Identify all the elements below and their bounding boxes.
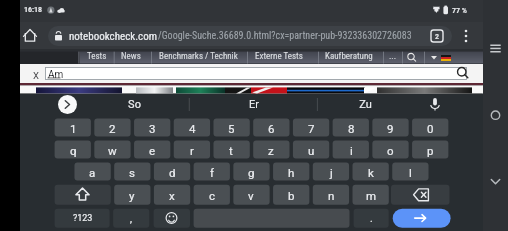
staticText: l <box>409 166 412 179</box>
staticText: m <box>366 189 377 202</box>
button[interactable]: z <box>253 141 289 159</box>
staticText: g <box>248 166 255 179</box>
staticText: 5 <box>228 122 235 135</box>
staticText: i <box>350 144 353 157</box>
button[interactable]: i <box>333 141 369 159</box>
button[interactable]: Er <box>190 94 317 115</box>
staticText: y <box>129 189 135 202</box>
staticText: 77 % <box>452 6 467 15</box>
staticText: Kaufberatung <box>325 51 373 62</box>
button[interactable]: 7 <box>293 119 329 137</box>
button[interactable]: e <box>134 141 170 159</box>
button[interactable]: Enter <box>393 209 451 228</box>
staticText: s <box>129 166 135 179</box>
button[interactable]: g <box>233 163 269 181</box>
staticText: u <box>308 144 315 157</box>
staticText: r <box>190 144 194 157</box>
button[interactable]: 9 <box>372 119 408 137</box>
button[interactable]: Tabs <box>430 29 444 43</box>
button[interactable]: 2 <box>94 119 130 137</box>
button[interactable]: x <box>154 185 190 205</box>
button[interactable]: l <box>392 163 428 181</box>
staticText: . <box>370 213 373 225</box>
button[interactable]: d <box>154 163 190 181</box>
staticText: e <box>149 144 156 157</box>
button[interactable]: Shift <box>55 185 111 205</box>
button[interactable]: Emoji <box>154 209 190 228</box>
button[interactable]: h <box>273 163 309 181</box>
button[interactable]: u <box>293 141 329 159</box>
staticText: 2 <box>435 32 439 41</box>
button[interactable]: f <box>194 163 230 181</box>
staticText: 3 <box>149 122 156 135</box>
button[interactable]: q <box>55 141 91 159</box>
staticText: /Google-Suche.36689.0.html?cx=partner-pu… <box>158 30 412 42</box>
button[interactable]: w <box>94 141 130 159</box>
staticText: p <box>427 144 434 157</box>
staticText: k <box>368 166 374 179</box>
button[interactable]: p <box>412 141 448 159</box>
staticText: , <box>130 213 132 225</box>
button[interactable]: r <box>174 141 210 159</box>
staticText: w <box>108 144 117 157</box>
staticText: b <box>288 189 295 202</box>
button[interactable]: m <box>353 185 389 205</box>
staticText: j <box>330 166 333 179</box>
staticText: n <box>328 189 335 202</box>
staticText: 8 <box>348 122 355 135</box>
staticText: f <box>210 166 214 179</box>
button[interactable]: , <box>113 209 149 228</box>
staticText: 0 <box>427 122 434 135</box>
staticText: 16:18 <box>24 5 43 14</box>
staticText: z <box>268 144 274 157</box>
button[interactable]: 4 <box>174 119 210 137</box>
button[interactable]: j <box>313 163 349 181</box>
button[interactable]: n <box>313 185 349 205</box>
button[interactable]: So <box>80 94 189 115</box>
staticText: Tests <box>87 51 107 62</box>
staticText: 6 <box>268 122 275 135</box>
button[interactable]: v <box>233 185 269 205</box>
staticText: News <box>121 51 141 62</box>
staticText: Benchmarks / Technik <box>159 51 238 62</box>
button[interactable]: Zu <box>318 94 412 115</box>
button[interactable]: 3 <box>134 119 170 137</box>
staticText: v <box>248 189 254 202</box>
staticText: h <box>288 166 295 179</box>
staticText: X <box>33 70 39 81</box>
staticText: 4 <box>189 122 196 135</box>
button[interactable]: b <box>273 185 309 205</box>
staticText: t <box>229 144 233 157</box>
staticText: d <box>169 166 176 179</box>
staticText: notebookcheck.com <box>69 30 157 43</box>
button[interactable]: 6 <box>253 119 289 137</box>
button[interactable]: 5 <box>213 119 249 137</box>
button[interactable]: ?123 <box>55 209 110 228</box>
staticText: 7 <box>308 122 315 135</box>
button[interactable]: y <box>114 185 150 205</box>
staticText: Er <box>249 98 259 111</box>
button[interactable]: o <box>372 141 408 159</box>
button[interactable]: Backspace <box>391 185 450 205</box>
button[interactable]: c <box>194 185 230 205</box>
button[interactable]: k <box>353 163 389 181</box>
staticText: 1 <box>70 122 77 135</box>
button[interactable]: t <box>213 141 249 159</box>
staticText: a <box>89 166 96 179</box>
staticText: 9 <box>387 122 394 135</box>
button[interactable]: 1 <box>55 119 91 137</box>
button[interactable]: More options <box>459 29 473 43</box>
staticText: ?123 <box>73 213 93 224</box>
staticText: 2 <box>109 122 116 135</box>
button[interactable] <box>48 26 452 46</box>
staticText: Zu <box>359 98 372 111</box>
staticText: Externe Tests <box>255 51 303 62</box>
button[interactable]: s <box>114 163 150 181</box>
staticText: q <box>70 144 77 157</box>
button[interactable]: . <box>354 209 389 228</box>
button[interactable]: 0 <box>412 119 448 137</box>
button[interactable]: 8 <box>333 119 369 137</box>
button[interactable]: a <box>74 163 110 181</box>
staticText: Am <box>48 69 64 81</box>
